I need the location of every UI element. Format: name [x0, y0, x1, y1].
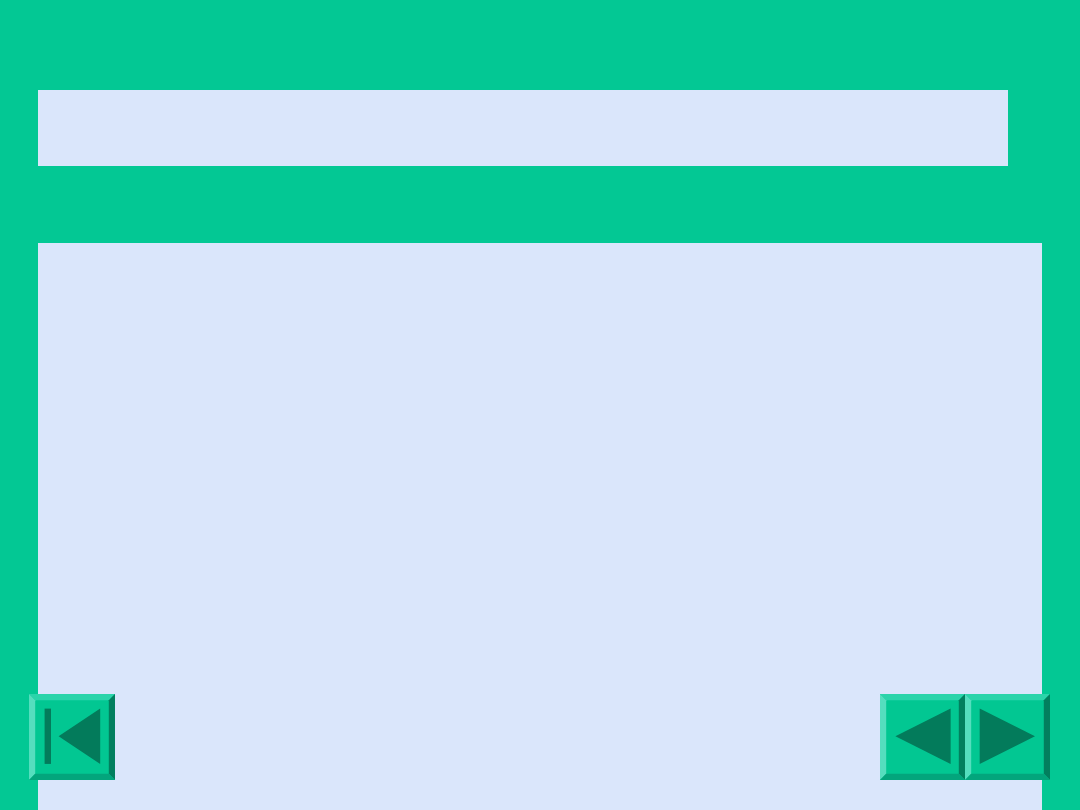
- button[interactable]: Go to next slide: [965, 694, 1050, 780]
- button[interactable]: Go to first slide: [29, 694, 115, 780]
- button[interactable]: Go to previous slide: [880, 694, 965, 780]
- button[interactable]: Content placeholder: [38, 243, 1042, 810]
